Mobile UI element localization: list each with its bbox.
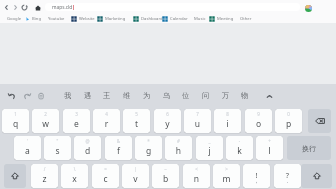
staticText: Calendar [170, 16, 188, 22]
staticText: Music [194, 16, 206, 22]
staticText: # [165, 138, 192, 144]
button[interactable]: Other [240, 14, 252, 23]
staticText: Google [7, 16, 22, 22]
button[interactable]: Marketing [97, 14, 126, 23]
button[interactable]: Backspace [308, 109, 331, 133]
staticText: . [274, 177, 301, 185]
button[interactable]: 维 [118, 86, 136, 104]
button[interactable]: & [105, 136, 132, 160]
button[interactable]: " [44, 136, 71, 160]
button[interactable]: Shift [4, 164, 26, 188]
staticText: 8 [214, 111, 241, 117]
button[interactable]: < [183, 164, 210, 188]
button[interactable]: Home [32, 2, 43, 13]
button[interactable]: 8 [214, 109, 241, 133]
button[interactable]: 4 [93, 109, 120, 133]
staticText: Meeting [217, 16, 234, 22]
button[interactable]: | [122, 164, 149, 188]
button[interactable]: 我 [59, 86, 77, 104]
staticText: 王 [103, 91, 111, 100]
button[interactable]: Google [7, 14, 22, 23]
button[interactable]: maps.cld [45, 3, 300, 11]
button[interactable]: 0 [275, 109, 302, 133]
staticText: p [275, 118, 302, 130]
button[interactable]: 换行 [287, 136, 331, 160]
staticText: > [213, 166, 240, 172]
staticText: s [44, 145, 71, 157]
staticText: g [135, 145, 162, 157]
staticText: n [183, 173, 210, 185]
staticText: 乌 [163, 91, 171, 100]
button[interactable]: 位 [177, 86, 195, 104]
staticText: j [196, 145, 223, 157]
button[interactable]: Clipboard [34, 89, 48, 103]
button[interactable]: ' [14, 136, 41, 160]
staticText: , [243, 177, 270, 185]
button[interactable]: 3 [63, 109, 90, 133]
staticText: f [105, 145, 132, 157]
button[interactable]: Back [1, 2, 12, 13]
button[interactable]: Forward [10, 2, 21, 13]
staticText: 7 [184, 111, 211, 117]
button[interactable]: - [226, 136, 253, 160]
staticText: Dashboard [141, 16, 163, 22]
button[interactable]: 为 [138, 86, 156, 104]
button[interactable]: Music [194, 14, 206, 23]
button[interactable]: @ [74, 136, 101, 160]
staticText: o [245, 118, 272, 130]
button[interactable]: 6 [154, 109, 181, 133]
button[interactable]: _ [196, 136, 223, 160]
button[interactable]: Meeting [209, 14, 234, 23]
button[interactable]: > [213, 164, 240, 188]
button[interactable]: Website [71, 14, 95, 23]
button[interactable]: ? [274, 164, 301, 188]
staticText: 问 [202, 91, 210, 100]
button[interactable]: 物 [236, 86, 254, 104]
button[interactable]: 乌 [158, 86, 176, 104]
button[interactable]: 7 [184, 109, 211, 133]
button[interactable]: Reload [19, 2, 30, 13]
button[interactable]: 1 [2, 109, 29, 133]
staticText: l [256, 145, 283, 157]
staticText: / [31, 166, 58, 172]
button[interactable]: Undo [5, 89, 19, 103]
button[interactable]: / [31, 164, 58, 188]
button[interactable]: \ [61, 164, 88, 188]
button[interactable]: Symbols [301, 164, 332, 188]
staticText: 0 [275, 111, 302, 117]
staticText: 5 [123, 111, 150, 117]
staticText: z [31, 173, 58, 185]
button[interactable]: 万 [217, 86, 235, 104]
staticText: k [226, 145, 253, 157]
staticText: t [123, 118, 150, 130]
button[interactable]: Calendar [162, 14, 188, 23]
button[interactable]: 2 [32, 109, 59, 133]
button[interactable]: 5 [123, 109, 150, 133]
staticText: q [2, 118, 29, 130]
button[interactable]: 遇 [79, 86, 97, 104]
staticText: maps.cld [52, 4, 73, 11]
staticText: 2 [32, 111, 59, 117]
button[interactable]: ! [243, 164, 270, 188]
staticText: @ [74, 138, 101, 144]
staticText: i [214, 118, 241, 130]
button[interactable]: Bing [24, 14, 41, 23]
button[interactable]: Profile [303, 3, 313, 13]
button[interactable]: 9 [245, 109, 272, 133]
staticText: Bing [32, 16, 41, 22]
button[interactable]: Dashboard [133, 14, 163, 23]
button[interactable]: ~ [152, 164, 179, 188]
button[interactable]: * [135, 136, 162, 160]
button[interactable]: 问 [197, 86, 215, 104]
button[interactable]: = [92, 164, 119, 188]
button[interactable]: Youtube [48, 14, 65, 23]
staticText: * [135, 138, 162, 144]
button[interactable]: + [256, 136, 283, 160]
button[interactable]: Expand candidates [263, 90, 275, 102]
staticText: Marketing [105, 16, 126, 22]
button[interactable]: 王 [98, 86, 116, 104]
button[interactable]: # [165, 136, 192, 160]
staticText: 6 [154, 111, 181, 117]
button[interactable]: Redo [20, 89, 34, 103]
